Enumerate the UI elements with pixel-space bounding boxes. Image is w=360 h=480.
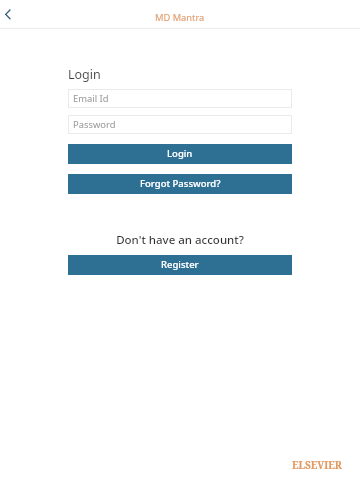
staticText: Email Id bbox=[73, 92, 109, 105]
button[interactable]: Login bbox=[68, 144, 292, 164]
button[interactable]: Password bbox=[68, 115, 292, 134]
staticText: Register bbox=[161, 258, 199, 271]
staticText: MD Mantra bbox=[155, 11, 205, 24]
button[interactable]: Back bbox=[0, 0, 28, 28]
staticText: Login bbox=[68, 66, 101, 83]
staticText: Password bbox=[73, 118, 116, 131]
button[interactable]: Email Id bbox=[68, 89, 292, 108]
staticText: Don't have an account? bbox=[68, 232, 292, 248]
staticText: Forgot Password? bbox=[140, 177, 221, 190]
button[interactable]: Forgot Password? bbox=[68, 174, 292, 194]
button[interactable]: Register bbox=[68, 255, 292, 275]
staticText: ELSEVIER bbox=[292, 458, 342, 472]
staticText: Login bbox=[167, 147, 193, 160]
